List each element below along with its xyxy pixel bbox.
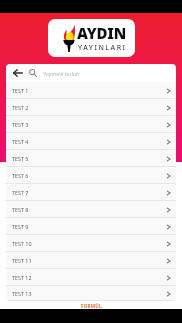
staticText: TEST 11 <box>12 257 32 264</box>
button[interactable]: TEST 8 <box>6 201 176 218</box>
staticText: TEST 5 <box>12 155 29 162</box>
button[interactable]: TEST 3 <box>6 116 176 133</box>
button[interactable]: TEST 4 <box>6 133 176 150</box>
staticText: TEST 8 <box>12 206 29 213</box>
staticText: TEST 1 <box>12 87 29 94</box>
button[interactable]: TEST 13 <box>6 286 176 301</box>
staticText: TEST 12 <box>12 274 32 281</box>
button[interactable]: TEST 7 <box>6 184 176 201</box>
button[interactable]: TEST 10 <box>6 235 176 252</box>
staticText: TEST 9 <box>12 223 29 230</box>
staticText: AYDIN <box>77 23 127 43</box>
button[interactable]: TEST 5 <box>6 150 176 167</box>
button[interactable]: AYDIN <box>48 19 135 57</box>
button[interactable]: TEST 9 <box>6 218 176 235</box>
button[interactable]: TEST 11 <box>6 252 176 269</box>
staticText: TEST 13 <box>12 290 32 297</box>
button[interactable]: TEST 12 <box>6 269 176 286</box>
button[interactable]: Back <box>9 64 27 82</box>
staticText: TEST 7 <box>12 189 29 196</box>
staticText: TEST 10 <box>12 240 32 247</box>
staticText: TEST 4 <box>12 138 29 145</box>
staticText: TEST 6 <box>12 172 29 179</box>
staticText: YAYINLARI <box>78 43 127 53</box>
button[interactable]: TEST 1 <box>6 82 176 99</box>
button[interactable]: TEST 2 <box>6 99 176 116</box>
staticText: TEST 2 <box>12 104 29 111</box>
button[interactable]: TEST 6 <box>6 167 176 184</box>
staticText: Yayınevi bulun <box>43 70 80 77</box>
staticText: TEST 3 <box>12 121 29 128</box>
staticText: FORMÜL <box>81 303 102 309</box>
